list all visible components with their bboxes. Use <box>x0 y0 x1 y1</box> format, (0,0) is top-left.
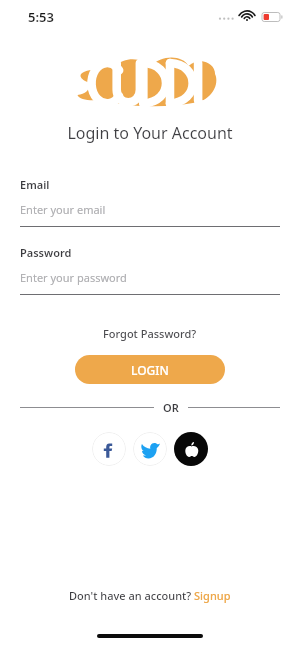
staticText: Email <box>20 177 50 192</box>
staticText: LOGIN <box>131 362 169 378</box>
staticText: Enter your email <box>20 202 106 217</box>
staticText: Enter your password <box>20 270 127 285</box>
staticText: Don't have an account? Signup <box>69 588 231 603</box>
staticText: 5:53 <box>28 8 54 26</box>
button[interactable]: Sign in with Apple <box>174 432 208 466</box>
button[interactable]: Sign in with Facebook <box>92 432 126 466</box>
staticText: Forgot Password? <box>103 326 197 341</box>
staticText: OR <box>163 400 179 415</box>
staticText: Login to Your Account <box>0 122 300 144</box>
button[interactable]: Enter your password <box>20 270 280 295</box>
button[interactable]: Enter your email <box>20 202 280 227</box>
button[interactable]: Sign in with Twitter <box>133 432 167 466</box>
button[interactable]: LOGIN <box>75 355 225 384</box>
staticText: Password <box>20 245 72 260</box>
button[interactable]: Forgot Password? <box>95 323 205 344</box>
button[interactable]: Don't have an account? Signup <box>63 585 237 606</box>
